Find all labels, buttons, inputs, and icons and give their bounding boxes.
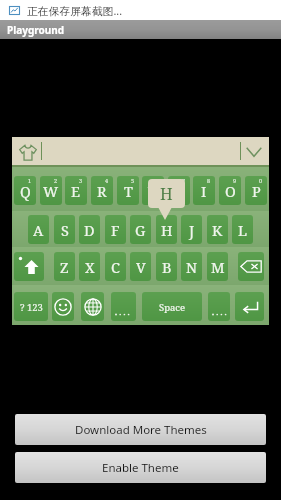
button[interactable]: Y	[142, 176, 164, 205]
button[interactable]: Download More Themes	[15, 414, 266, 445]
button[interactable]: Space	[142, 292, 202, 321]
staticText: P	[252, 181, 261, 201]
button[interactable]: X	[79, 252, 100, 281]
staticText: R	[97, 181, 107, 201]
button[interactable]: P	[245, 176, 267, 205]
button[interactable]: Emoji	[52, 292, 74, 321]
staticText: Space	[159, 301, 186, 314]
staticText: J	[189, 220, 195, 240]
staticText: 8	[207, 177, 211, 184]
staticText: Q	[20, 181, 31, 201]
staticText: H	[161, 220, 173, 240]
button[interactable]: M	[207, 252, 228, 281]
staticText: 7	[182, 177, 186, 184]
button[interactable]	[111, 292, 136, 321]
button[interactable]: Expand candidates	[246, 147, 262, 157]
staticText: X	[85, 257, 95, 277]
button[interactable]: S	[54, 215, 75, 244]
button[interactable]: I	[193, 176, 215, 205]
staticText: H	[160, 183, 173, 205]
button[interactable]: Switch language	[81, 292, 104, 321]
staticText: W	[43, 181, 59, 201]
button[interactable]: A	[28, 215, 49, 244]
staticText: I	[201, 181, 207, 201]
button[interactable]: H	[156, 215, 177, 244]
button[interactable]: Z	[54, 252, 75, 281]
staticText: T	[124, 181, 133, 201]
staticText: 0	[259, 177, 263, 184]
staticText: Z	[60, 257, 69, 277]
staticText: S	[61, 220, 69, 240]
staticText: ? 123	[20, 301, 43, 314]
staticText: V	[136, 257, 146, 277]
button[interactable]: V	[130, 252, 151, 281]
button[interactable]	[208, 292, 230, 321]
button[interactable]: D	[79, 215, 100, 244]
staticText: K	[212, 220, 223, 240]
staticText: C	[111, 257, 120, 277]
button[interactable]: Q	[14, 176, 36, 205]
button[interactable]: L	[232, 215, 253, 244]
staticText: F	[111, 220, 120, 240]
button[interactable]: Enter	[235, 292, 264, 321]
button[interactable]: Backspace	[238, 252, 264, 281]
staticText: D	[84, 220, 95, 240]
staticText: O	[225, 181, 236, 201]
staticText: Download More Themes	[75, 422, 207, 438]
staticText: G	[135, 220, 146, 240]
button[interactable]: Shift	[14, 252, 44, 281]
staticText: B	[162, 257, 172, 277]
staticText: E	[71, 181, 81, 201]
button[interactable]: O	[219, 176, 241, 205]
button[interactable]: G	[130, 215, 151, 244]
button[interactable]: Enable Theme	[15, 452, 266, 483]
staticText: 正在保存屏幕截图...	[27, 3, 123, 18]
staticText: 9	[233, 177, 237, 184]
button[interactable]: K	[207, 215, 228, 244]
staticText: Enable Theme	[102, 460, 179, 476]
staticText: 6	[156, 177, 160, 184]
button[interactable]: F	[105, 215, 126, 244]
staticText: 3	[79, 177, 83, 184]
button[interactable]: J	[181, 215, 202, 244]
button[interactable]: B	[156, 252, 177, 281]
staticText: Playground	[7, 23, 65, 37]
button[interactable]: T	[117, 176, 139, 205]
staticText: 5	[131, 177, 135, 184]
staticText: 4	[105, 177, 109, 184]
staticText: A	[33, 220, 44, 240]
button[interactable]: R	[91, 176, 113, 205]
button[interactable]: C	[105, 252, 126, 281]
staticText: 1	[28, 177, 32, 184]
staticText: M	[211, 257, 225, 277]
staticText: L	[238, 220, 248, 240]
button[interactable]: U	[168, 176, 190, 205]
button[interactable]: W	[40, 176, 62, 205]
button[interactable]: N	[181, 252, 202, 281]
staticText: N	[186, 257, 198, 277]
button[interactable]: Theme	[19, 144, 37, 161]
staticText: 2	[54, 177, 58, 184]
button[interactable]: ? 123	[14, 292, 48, 321]
button[interactable]: E	[65, 176, 87, 205]
